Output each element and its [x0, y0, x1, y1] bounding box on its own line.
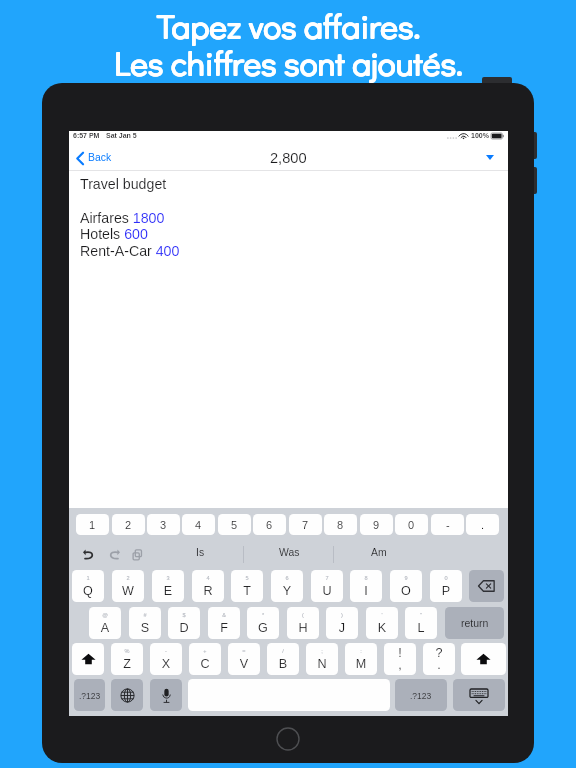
staticText: 6:57 PM [73, 132, 100, 140]
button[interactable]: ' [366, 607, 398, 639]
staticText: N [306, 657, 338, 671]
button[interactable]: Was [246, 544, 332, 561]
button[interactable]: 5 [218, 514, 251, 535]
button[interactable]: 3 [147, 514, 180, 535]
button[interactable]: ? [423, 643, 455, 675]
button[interactable]: Shift [461, 643, 506, 675]
button[interactable]: 0 [395, 514, 428, 535]
button[interactable]: Redo [108, 549, 120, 560]
staticText: . [481, 519, 485, 531]
button[interactable]: 6 [271, 570, 303, 602]
button[interactable]: Hide keyboard [453, 679, 505, 711]
button[interactable]: / [267, 643, 299, 675]
button[interactable]: return [445, 607, 504, 639]
staticText: 100% [471, 132, 489, 140]
button[interactable]: 2 [112, 514, 145, 535]
button[interactable]: 9 [360, 514, 393, 535]
staticText: @ [89, 612, 121, 618]
staticText: 5 [231, 575, 263, 581]
staticText: 3 [160, 519, 167, 531]
staticText: Tapez vos affaires. [1, 3, 576, 47]
button[interactable]: Back [76, 147, 112, 169]
button[interactable]: 1 [76, 514, 109, 535]
staticText: K [366, 621, 398, 635]
button[interactable]: $ [168, 607, 200, 639]
button[interactable]: # [129, 607, 161, 639]
button[interactable]: * [247, 607, 279, 639]
staticText: F [208, 621, 240, 635]
staticText: Travel budget [80, 176, 167, 192]
staticText: P [430, 584, 462, 598]
button[interactable]: % [111, 643, 143, 675]
staticText: 6 [266, 519, 273, 531]
button[interactable]: 7 [289, 514, 322, 535]
button[interactable]: 8 [324, 514, 357, 535]
staticText: Airfares 1800 Hotels 600 Rent-A-Car 400 [80, 210, 180, 259]
staticText: - [150, 648, 182, 654]
staticText: .?123 [79, 691, 101, 700]
button[interactable]: Is [157, 544, 243, 561]
button[interactable]: : [345, 643, 377, 675]
button[interactable]: Am [336, 544, 422, 561]
staticText: T [231, 584, 263, 598]
button[interactable]: 7 [311, 570, 343, 602]
staticText: G [247, 621, 279, 635]
staticText: Back [88, 152, 112, 164]
button[interactable]: + [189, 643, 221, 675]
button[interactable]: - [431, 514, 464, 535]
button[interactable]: 4 [182, 514, 215, 535]
button[interactable]: " [405, 607, 437, 639]
staticText: # [129, 612, 161, 618]
button[interactable]: ( [287, 607, 319, 639]
staticText: 2 [112, 575, 144, 581]
button[interactable]: .?123 [74, 679, 105, 711]
staticText: X [150, 657, 182, 671]
button[interactable]: ) [326, 607, 358, 639]
button[interactable]: = [228, 643, 260, 675]
staticText: .?123 [410, 691, 432, 700]
button[interactable]: - [150, 643, 182, 675]
button[interactable]: ; [306, 643, 338, 675]
button[interactable]: 5 [231, 570, 263, 602]
button[interactable]: 8 [350, 570, 382, 602]
staticText: Q [72, 584, 104, 598]
button[interactable]: & [208, 607, 240, 639]
button[interactable]: Next keyboard [111, 679, 143, 711]
staticText: ) [326, 612, 358, 618]
staticText: % [111, 648, 143, 654]
staticText: 3 [152, 575, 184, 581]
button[interactable]: .?123 [395, 679, 447, 711]
staticText: Tapez vos affaires. [0, 4, 576, 48]
staticText: , [384, 658, 416, 672]
staticText: 1 [72, 575, 104, 581]
button[interactable]: 1 [72, 570, 104, 602]
button[interactable]: Shift [72, 643, 104, 675]
button[interactable]: 0 [430, 570, 462, 602]
button[interactable]: 4 [192, 570, 224, 602]
button[interactable]: More options [474, 146, 498, 168]
button[interactable]: . [466, 514, 499, 535]
button[interactable]: Paste [132, 549, 143, 561]
button[interactable]: 6 [253, 514, 286, 535]
button[interactable]: ! [384, 643, 416, 675]
button[interactable]: 9 [390, 570, 422, 602]
staticText: 2 [125, 519, 132, 531]
staticText: 6 [271, 575, 303, 581]
button[interactable]: @ [89, 607, 121, 639]
button[interactable]: 2 [112, 570, 144, 602]
staticText: + [189, 648, 221, 654]
button[interactable]: Undo [83, 549, 95, 560]
button[interactable]: Backspace [469, 570, 504, 602]
staticText: 0 [430, 575, 462, 581]
button[interactable]: 3 [152, 570, 184, 602]
staticText: Sat Jan 5 [106, 132, 137, 140]
staticText: ( [287, 612, 319, 618]
staticText: 1 [89, 519, 96, 531]
staticText: Tapez vos affaires. [0, 3, 576, 47]
staticText: . [423, 658, 455, 672]
button[interactable]: Dictate [150, 679, 182, 711]
staticText: S [129, 621, 161, 635]
staticText: - [446, 519, 450, 531]
